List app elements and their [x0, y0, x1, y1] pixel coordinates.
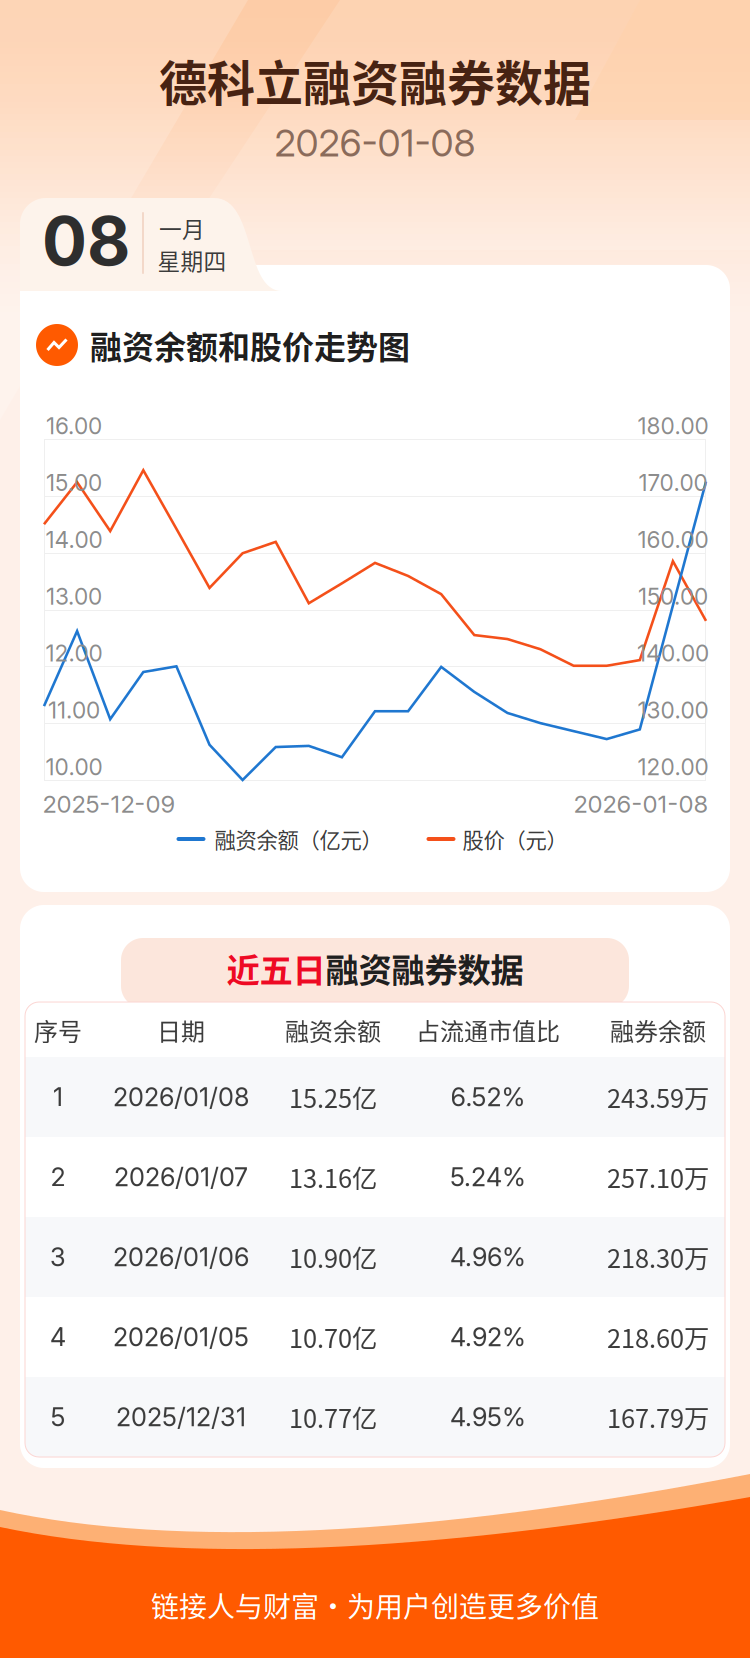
staticText: 15.25亿 [289, 1079, 377, 1115]
staticText: 4.95% [450, 1402, 526, 1432]
staticText: 13.16亿 [289, 1159, 377, 1195]
staticText: 14.00 [45, 526, 102, 553]
staticText: 2 [50, 1162, 65, 1192]
staticText: 星期四 [157, 244, 226, 276]
staticText: 13.00 [46, 583, 102, 610]
staticText: 2025/12/31 [116, 1402, 246, 1432]
staticText: 序号 [34, 1013, 82, 1047]
staticText: 融资余额和股价走势图 [90, 322, 410, 368]
staticText: 150.00 [638, 583, 708, 610]
staticText: 德科立融资融券数据 [159, 45, 591, 115]
staticText: 占流通市值比 [416, 1013, 560, 1047]
staticText: 257.10万 [607, 1159, 709, 1195]
staticText: 4 [50, 1322, 66, 1352]
staticText: 4.96% [450, 1242, 526, 1272]
staticText: 12.00 [45, 640, 102, 667]
staticText: 1 [53, 1082, 63, 1112]
staticText: 近五日 [226, 944, 325, 992]
staticText: 218.60万 [607, 1319, 709, 1355]
staticText: 2026-01-08 [573, 789, 708, 818]
staticText: 10.00 [45, 753, 102, 781]
staticText: 融资余额（亿元） [214, 824, 382, 854]
staticText: 11.00 [48, 696, 100, 724]
staticText: 170.00 [638, 469, 707, 496]
staticText: 2026/01/05 [113, 1322, 249, 1352]
staticText: 融资融券数据 [325, 944, 523, 992]
staticText: 08 [42, 201, 130, 281]
staticText: 融券余额 [610, 1013, 706, 1047]
staticText: 链接人与财富·为用户创造更多价值 [151, 1585, 599, 1625]
staticText: 2026/01/07 [114, 1162, 248, 1192]
staticText: 160.00 [637, 526, 708, 553]
staticText: 2026/01/08 [113, 1082, 249, 1112]
staticText: 10.90亿 [289, 1239, 377, 1275]
staticText: 4.92% [450, 1322, 526, 1352]
staticText: 167.79万 [607, 1399, 709, 1435]
staticText: 10.70亿 [289, 1319, 377, 1355]
staticText: 融资余额 [285, 1013, 381, 1047]
staticText: 3 [50, 1242, 66, 1272]
staticText: 股价（元） [462, 824, 567, 854]
staticText: 10.77亿 [289, 1399, 377, 1435]
staticText: 243.59万 [607, 1079, 709, 1115]
staticText: 6.52% [450, 1082, 525, 1112]
staticText: 2026/01/06 [113, 1242, 249, 1272]
staticText: 180.00 [637, 412, 708, 440]
staticText: 日期 [157, 1013, 205, 1047]
staticText: 5 [50, 1402, 65, 1432]
staticText: 2025-12-09 [42, 789, 175, 818]
staticText: 5.24% [450, 1162, 526, 1192]
staticText: 130.00 [637, 696, 708, 724]
staticText: 15.00 [46, 469, 102, 496]
staticText: 一月 [159, 212, 205, 244]
staticText: 140.00 [637, 640, 709, 667]
staticText: 120.00 [637, 753, 708, 781]
staticText: 218.30万 [607, 1239, 709, 1275]
staticText: 2026-01-08 [274, 120, 475, 166]
staticText: 16.00 [46, 412, 102, 440]
